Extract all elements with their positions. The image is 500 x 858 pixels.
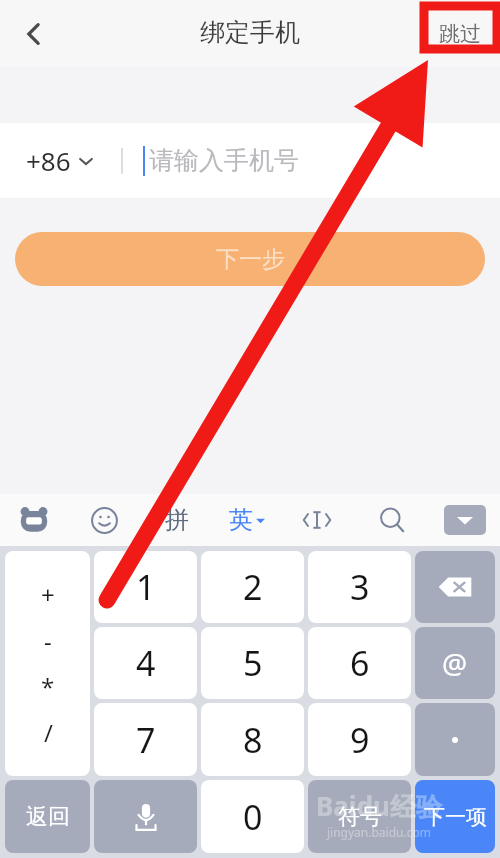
button[interactable]: Backspace (415, 551, 495, 623)
staticText: * (41, 670, 55, 703)
staticText: 拼 (165, 505, 189, 535)
staticText: / (44, 716, 53, 749)
button[interactable]: 9 (308, 703, 411, 776)
button[interactable]: 跳过 (424, 12, 496, 56)
staticText: 4 (136, 640, 156, 686)
button[interactable]: 5 (201, 627, 304, 699)
staticText: 5 (243, 640, 263, 686)
button[interactable]: 1 (94, 551, 197, 623)
staticText: 2 (243, 564, 263, 610)
staticText: 9 (350, 717, 370, 763)
button[interactable]: 7 (94, 703, 197, 776)
button[interactable] (415, 703, 495, 776)
button[interactable]: Back (6, 6, 62, 62)
staticText: 1 (136, 564, 156, 610)
button[interactable]: 请输入手机号 (149, 145, 500, 176)
staticText: +86 (26, 143, 71, 178)
staticText: 跳过 (439, 21, 481, 47)
staticText: 返回 (26, 803, 70, 831)
staticText: 8 (243, 717, 263, 763)
staticText: 3 (350, 564, 370, 610)
button[interactable]: 3 (308, 551, 411, 623)
button[interactable]: 拼 (155, 498, 199, 542)
staticText: 下一步 (216, 245, 285, 274)
button[interactable]: @ (415, 627, 495, 699)
button[interactable]: 6 (308, 627, 411, 699)
button[interactable]: 4 (94, 627, 197, 699)
staticText: 6 (350, 640, 370, 686)
button[interactable]: 英 (229, 498, 265, 542)
button[interactable]: 0 (201, 780, 304, 853)
button[interactable]: 符号 (308, 780, 411, 853)
staticText: + (41, 578, 55, 611)
button[interactable]: 2 (201, 551, 304, 623)
button[interactable]: Hide keyboard (444, 505, 486, 535)
staticText: 7 (136, 717, 156, 763)
button[interactable]: Emoji (84, 500, 124, 540)
staticText: 0 (243, 794, 263, 840)
staticText: 下一项 (424, 804, 487, 830)
button[interactable]: 8 (201, 703, 304, 776)
staticText: - (44, 624, 52, 657)
button[interactable]: + (5, 551, 90, 776)
button[interactable]: +86 (26, 143, 93, 178)
button[interactable]: 下一项 (415, 780, 495, 853)
staticText: 绑定手机 (200, 17, 300, 48)
button[interactable]: Voice input (94, 780, 197, 853)
button[interactable]: Move cursor (295, 498, 339, 542)
button[interactable]: 下一步 (15, 232, 485, 286)
staticText: @ (442, 644, 468, 682)
staticText: 英 (229, 505, 253, 535)
button[interactable]: Baidu input (14, 500, 54, 540)
staticText: 符号 (338, 803, 382, 831)
staticText: jingyan.baidu.com (327, 824, 431, 840)
staticText: Baidu经验 (316, 788, 442, 824)
button[interactable]: Search (370, 498, 414, 542)
button[interactable]: 返回 (5, 780, 90, 853)
